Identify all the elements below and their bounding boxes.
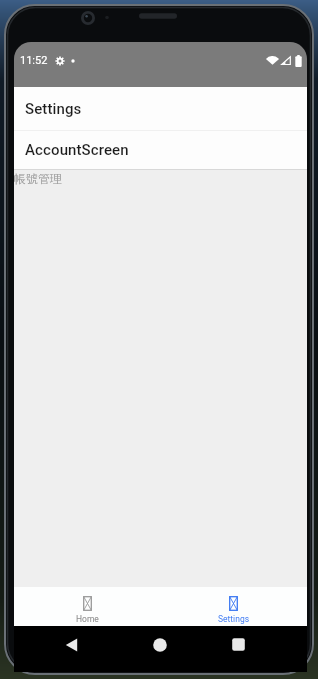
staticText: AccountScreen [25,141,129,159]
button[interactable] [65,638,78,652]
button[interactable]: AccountScreen [14,131,307,169]
staticText: Settings [218,614,250,624]
button[interactable]: Settings [160,587,307,626]
button[interactable] [232,638,245,651]
staticText: Home [76,614,99,624]
staticText: 11:52 [20,54,48,67]
button[interactable] [153,638,167,652]
staticText: Settings [25,100,82,118]
button[interactable]: Home [14,587,160,626]
staticText: 帳號管理 [14,171,62,186]
